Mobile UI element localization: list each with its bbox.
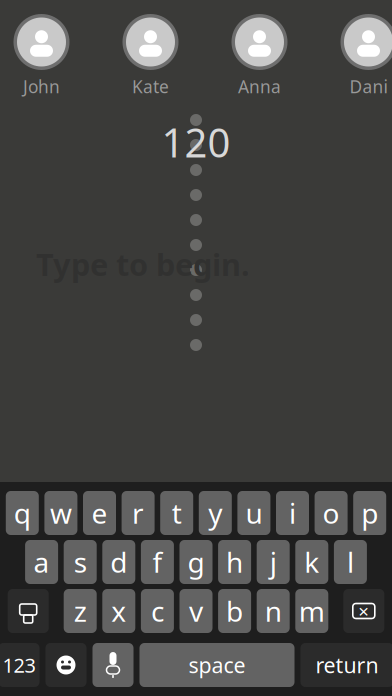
staticText: q xyxy=(14,494,31,532)
staticText: k xyxy=(304,543,319,581)
button[interactable]: a xyxy=(25,540,58,584)
staticText: g xyxy=(187,543,204,581)
staticText: w xyxy=(50,494,72,532)
button[interactable]: e xyxy=(83,491,116,535)
staticText: j xyxy=(270,543,277,581)
button[interactable]: n xyxy=(257,589,290,633)
button[interactable]: space xyxy=(139,643,294,687)
button[interactable]: r xyxy=(122,491,155,535)
button[interactable]: Dani xyxy=(340,14,392,94)
button[interactable]: Dictate xyxy=(92,643,133,687)
button[interactable]: t xyxy=(160,491,193,535)
staticText: Anna xyxy=(238,75,281,98)
button[interactable]: x xyxy=(102,589,135,633)
staticText: o xyxy=(323,494,340,532)
button[interactable]: Emoji xyxy=(45,643,86,687)
staticText: n xyxy=(265,592,282,630)
button[interactable]: Delete xyxy=(343,589,384,633)
button[interactable]: h xyxy=(218,540,251,584)
button[interactable]: d xyxy=(102,540,135,584)
staticText: h xyxy=(226,543,243,581)
button[interactable]: i xyxy=(276,491,309,535)
button[interactable]: g xyxy=(179,540,212,584)
staticText: Type to begin. xyxy=(36,244,250,284)
staticText: z xyxy=(74,592,87,630)
button[interactable]: p xyxy=(353,491,386,535)
staticText: p xyxy=(361,494,378,532)
staticText: space xyxy=(188,651,245,679)
staticText: m xyxy=(299,592,325,630)
staticText: John xyxy=(23,75,60,98)
button[interactable]: Kate xyxy=(122,14,178,94)
staticText: Kate xyxy=(132,75,169,98)
button[interactable]: b xyxy=(218,589,251,633)
button[interactable]: k xyxy=(295,540,328,584)
button[interactable]: y xyxy=(199,491,232,535)
staticText: s xyxy=(74,543,87,581)
staticText: 123 xyxy=(2,652,35,678)
button[interactable]: j xyxy=(257,540,290,584)
staticText: a xyxy=(34,543,50,581)
staticText: c xyxy=(151,592,164,630)
staticText: d xyxy=(110,543,127,581)
button[interactable]: l xyxy=(334,540,367,584)
button[interactable]: v xyxy=(179,589,212,633)
button[interactable]: o xyxy=(315,491,348,535)
staticText: f xyxy=(152,543,162,581)
staticText: e xyxy=(91,494,107,532)
staticText: v xyxy=(189,592,203,630)
staticText: return xyxy=(315,651,378,679)
button[interactable]: return xyxy=(300,643,392,687)
staticText: x xyxy=(111,592,126,630)
staticText: t xyxy=(172,494,182,532)
staticText: r xyxy=(132,494,144,532)
button[interactable]: s xyxy=(64,540,97,584)
staticText: y xyxy=(208,494,222,532)
staticText: × xyxy=(358,599,369,623)
button[interactable]: m xyxy=(295,589,328,633)
button[interactable]: Anna xyxy=(231,14,287,94)
staticText: l xyxy=(347,543,354,581)
button[interactable]: Shift xyxy=(8,589,49,633)
staticText: b xyxy=(226,592,243,630)
button[interactable]: z xyxy=(64,589,97,633)
button[interactable]: f xyxy=(141,540,174,584)
staticText: i xyxy=(289,494,296,532)
button[interactable]: John xyxy=(13,14,69,94)
staticText: u xyxy=(245,494,262,532)
button[interactable]: 123 xyxy=(0,643,39,687)
button[interactable]: u xyxy=(237,491,270,535)
button[interactable]: c xyxy=(141,589,174,633)
button[interactable]: w xyxy=(44,491,77,535)
staticText: 120 xyxy=(161,115,230,168)
staticText: Dani xyxy=(349,75,387,98)
button[interactable]: q xyxy=(6,491,39,535)
